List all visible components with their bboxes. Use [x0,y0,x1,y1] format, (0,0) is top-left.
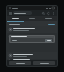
button[interactable] [13,11,32,15]
button[interactable] [7,16,23,21]
button[interactable]: Search [41,11,46,16]
button[interactable] [33,61,55,65]
button[interactable]: More options [51,11,56,16]
button[interactable] [45,39,52,42]
button[interactable]: Refresh [46,11,51,16]
button[interactable] [23,16,40,21]
button[interactable] [9,61,31,65]
button[interactable] [40,16,57,21]
button[interactable] [7,33,57,40]
button[interactable] [7,52,57,59]
button[interactable] [11,38,53,42]
button[interactable]: Menu [8,11,12,15]
button[interactable] [7,59,57,60]
button[interactable] [7,26,57,33]
